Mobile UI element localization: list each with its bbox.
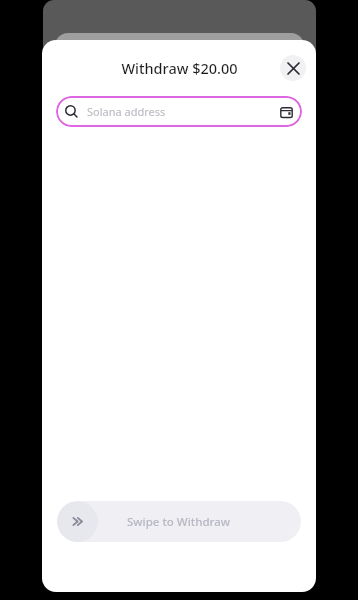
button[interactable]: Swipe to Withdraw — [57, 501, 301, 542]
staticText: Swipe to Withdraw — [127, 514, 231, 530]
staticText: Withdraw $20.00 — [121, 58, 238, 78]
staticText: Solana address — [87, 104, 274, 119]
button[interactable]: Solana address — [56, 96, 302, 127]
button[interactable]: Choose wallet — [274, 100, 298, 124]
button[interactable]: Close — [280, 55, 306, 81]
